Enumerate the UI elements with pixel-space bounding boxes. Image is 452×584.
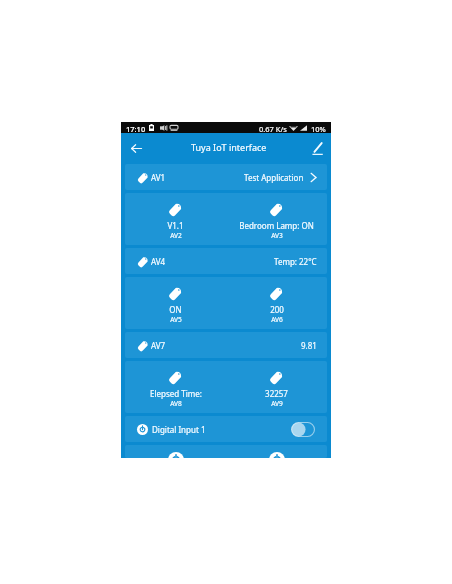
button[interactable]: AV4 [125, 248, 327, 274]
button[interactable]: 32257 [226, 361, 327, 413]
staticText: 200 [270, 304, 284, 315]
staticText: ON [169, 304, 182, 315]
staticText: Bedroom Lamp: ON [239, 220, 314, 231]
button[interactable]: Digital Input 1 [125, 416, 327, 442]
staticText: 10% [311, 124, 326, 134]
staticText: 32257 [265, 388, 288, 399]
staticText: AV9 [271, 399, 283, 408]
staticText: AV5 [170, 315, 182, 324]
staticText: Test Application [244, 172, 304, 183]
button[interactable]: ON [125, 277, 226, 329]
button[interactable]: Back [127, 139, 146, 158]
button[interactable]: Elepsed Time: [125, 361, 226, 413]
staticText: AV2 [170, 231, 182, 240]
staticText: 17:10 [126, 124, 146, 134]
button[interactable]: Digital Output 2 [226, 445, 327, 458]
staticText: AV4 [151, 256, 166, 267]
staticText: AV3 [271, 231, 283, 240]
button[interactable]: AV7 [125, 332, 327, 358]
staticText: 9.81 [301, 340, 317, 351]
button[interactable]: Digital Output 1 [125, 445, 226, 458]
staticText: AV1 [151, 172, 166, 183]
staticText: AV8 [170, 399, 182, 408]
button[interactable]: 200 [226, 277, 327, 329]
staticText: Tuya IoT interface [191, 141, 267, 153]
button[interactable]: Edit [308, 139, 327, 158]
staticText: Temp: 22°C [274, 256, 317, 267]
staticText: Digital Input 1 [152, 424, 206, 435]
staticText: AV7 [151, 340, 166, 351]
staticText: V1.1 [167, 220, 184, 231]
button[interactable]: Bedroom Lamp: ON [226, 193, 327, 245]
button[interactable]: AV1 [125, 164, 327, 190]
staticText: 0.67 K/s [259, 124, 287, 134]
staticText: Elepsed Time: [150, 388, 202, 399]
button[interactable]: V1.1 [125, 193, 226, 245]
staticText: AV6 [271, 315, 283, 324]
